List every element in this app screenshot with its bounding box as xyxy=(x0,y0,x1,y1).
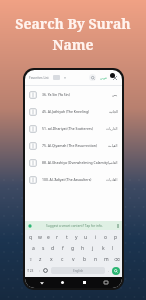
staticText: 51. ad-Dhariyat (The Scatterers) xyxy=(42,126,93,131)
staticText: u xyxy=(84,234,88,241)
staticText: العاديات xyxy=(106,178,118,182)
staticText: الذاريات xyxy=(106,127,118,131)
staticText: عربى xyxy=(100,76,108,80)
button[interactable]: . xyxy=(108,268,109,273)
staticText: c xyxy=(61,256,64,263)
button[interactable]: p xyxy=(111,232,121,243)
button[interactable]: o xyxy=(101,232,111,243)
staticText: d xyxy=(51,245,55,252)
button[interactable]: u xyxy=(81,232,91,243)
button[interactable]: k xyxy=(98,243,108,254)
button[interactable]: m xyxy=(101,254,112,265)
button[interactable]: h xyxy=(78,243,88,254)
button[interactable]: 75. Al-Qiyamah (The Resurrection) xyxy=(25,137,122,154)
button[interactable]: l xyxy=(108,243,118,254)
button[interactable]: r xyxy=(53,232,62,243)
button[interactable]: 45. Al-Jathiyah (The Kneeling) xyxy=(25,103,122,120)
staticText: v xyxy=(72,256,75,263)
button[interactable]: b xyxy=(79,254,90,265)
staticText: k xyxy=(102,245,105,252)
staticText: Search By Surah xyxy=(15,14,131,33)
staticText: ⌫ xyxy=(114,257,120,262)
button[interactable]: v xyxy=(68,254,79,265)
staticText: Favorites List xyxy=(29,76,49,80)
staticText: n xyxy=(94,256,98,263)
button[interactable]: c xyxy=(57,254,68,265)
staticText: الغاشية xyxy=(109,161,118,165)
staticText: j xyxy=(92,245,94,252)
button[interactable]: q xyxy=(26,232,35,243)
button[interactable]: Settings xyxy=(43,268,48,273)
button[interactable]: y xyxy=(71,232,81,243)
staticText: 36. Ya Sin (Ya Sin) xyxy=(42,92,70,97)
button[interactable]: 36. Ya Sin (Ya Sin) xyxy=(25,86,122,103)
button[interactable]: Language xyxy=(100,75,108,81)
button[interactable]: Home xyxy=(58,278,67,287)
staticText: الجاثية xyxy=(109,110,118,114)
staticText: g xyxy=(71,245,75,252)
staticText: x xyxy=(50,256,53,263)
button[interactable]: !123 xyxy=(27,269,34,273)
staticText: i xyxy=(95,234,97,241)
staticText: f xyxy=(62,245,64,252)
staticText: English xyxy=(73,269,84,273)
button[interactable]: x xyxy=(46,254,57,265)
button[interactable]: t xyxy=(62,232,71,243)
button[interactable]: 100. Al-'Adiyat (The Assaulters) xyxy=(25,171,122,188)
staticText: z xyxy=(39,256,42,263)
button[interactable]: g xyxy=(68,243,78,254)
staticText: 88. Al-Ghashiya (Overwhelming Calamity) xyxy=(42,160,109,165)
staticText: r xyxy=(56,234,59,241)
staticText: Suggest a smart content? Tap for info. xyxy=(46,224,103,228)
staticText: : xyxy=(39,269,40,273)
button[interactable]: j xyxy=(88,243,98,254)
button[interactable]: 88. Al-Ghashiya (Overwhelming Calamity) xyxy=(25,154,122,171)
button[interactable]: 51. ad-Dhariyat (The Scatterers) xyxy=(25,120,122,137)
staticText: 75. Al-Qiyamah (The Resurrection) xyxy=(42,143,98,148)
staticText: h xyxy=(81,245,85,252)
button[interactable]: Emoji xyxy=(37,269,41,273)
button[interactable]: Sort xyxy=(63,76,67,80)
staticText: t xyxy=(66,234,68,241)
button[interactable]: n xyxy=(90,254,101,265)
staticText: يس xyxy=(112,93,118,97)
button[interactable]: Recents xyxy=(80,278,89,287)
staticText: ⇧ xyxy=(29,257,33,262)
button[interactable]: Backspace xyxy=(112,254,121,265)
button[interactable]: e xyxy=(44,232,53,243)
button[interactable]: z xyxy=(35,254,46,265)
staticText: 45. Al-Jathiyah (The Kneeling) xyxy=(42,109,90,114)
button[interactable]: d xyxy=(48,243,58,254)
staticText: e xyxy=(47,234,50,241)
staticText: w xyxy=(38,234,42,241)
button[interactable]: Back xyxy=(37,278,46,287)
staticText: y xyxy=(75,234,78,241)
button[interactable]: s xyxy=(38,243,48,254)
button[interactable]: Shift xyxy=(26,254,35,265)
staticText: a xyxy=(32,245,35,252)
button[interactable]: English xyxy=(51,267,105,274)
button[interactable]: Search xyxy=(89,74,96,81)
button[interactable]: i xyxy=(91,232,101,243)
staticText: m xyxy=(104,256,109,263)
staticText: q xyxy=(29,234,33,241)
button[interactable]: Close xyxy=(111,74,118,81)
staticText: b xyxy=(83,256,87,263)
button[interactable]: f xyxy=(58,243,68,254)
button[interactable]: a xyxy=(29,243,38,254)
staticText: 100. Al-'Adiyat (The Assaulters) xyxy=(42,177,92,182)
staticText: l xyxy=(112,245,114,252)
staticText: p xyxy=(114,234,118,241)
button[interactable]: Search xyxy=(112,267,120,275)
staticText: القيامة xyxy=(108,144,118,148)
staticText: o xyxy=(104,234,108,241)
staticText: s xyxy=(42,245,45,252)
button[interactable]: w xyxy=(35,232,44,243)
staticText: Name xyxy=(52,35,94,54)
button[interactable]: Keyboard toggle xyxy=(101,278,110,287)
